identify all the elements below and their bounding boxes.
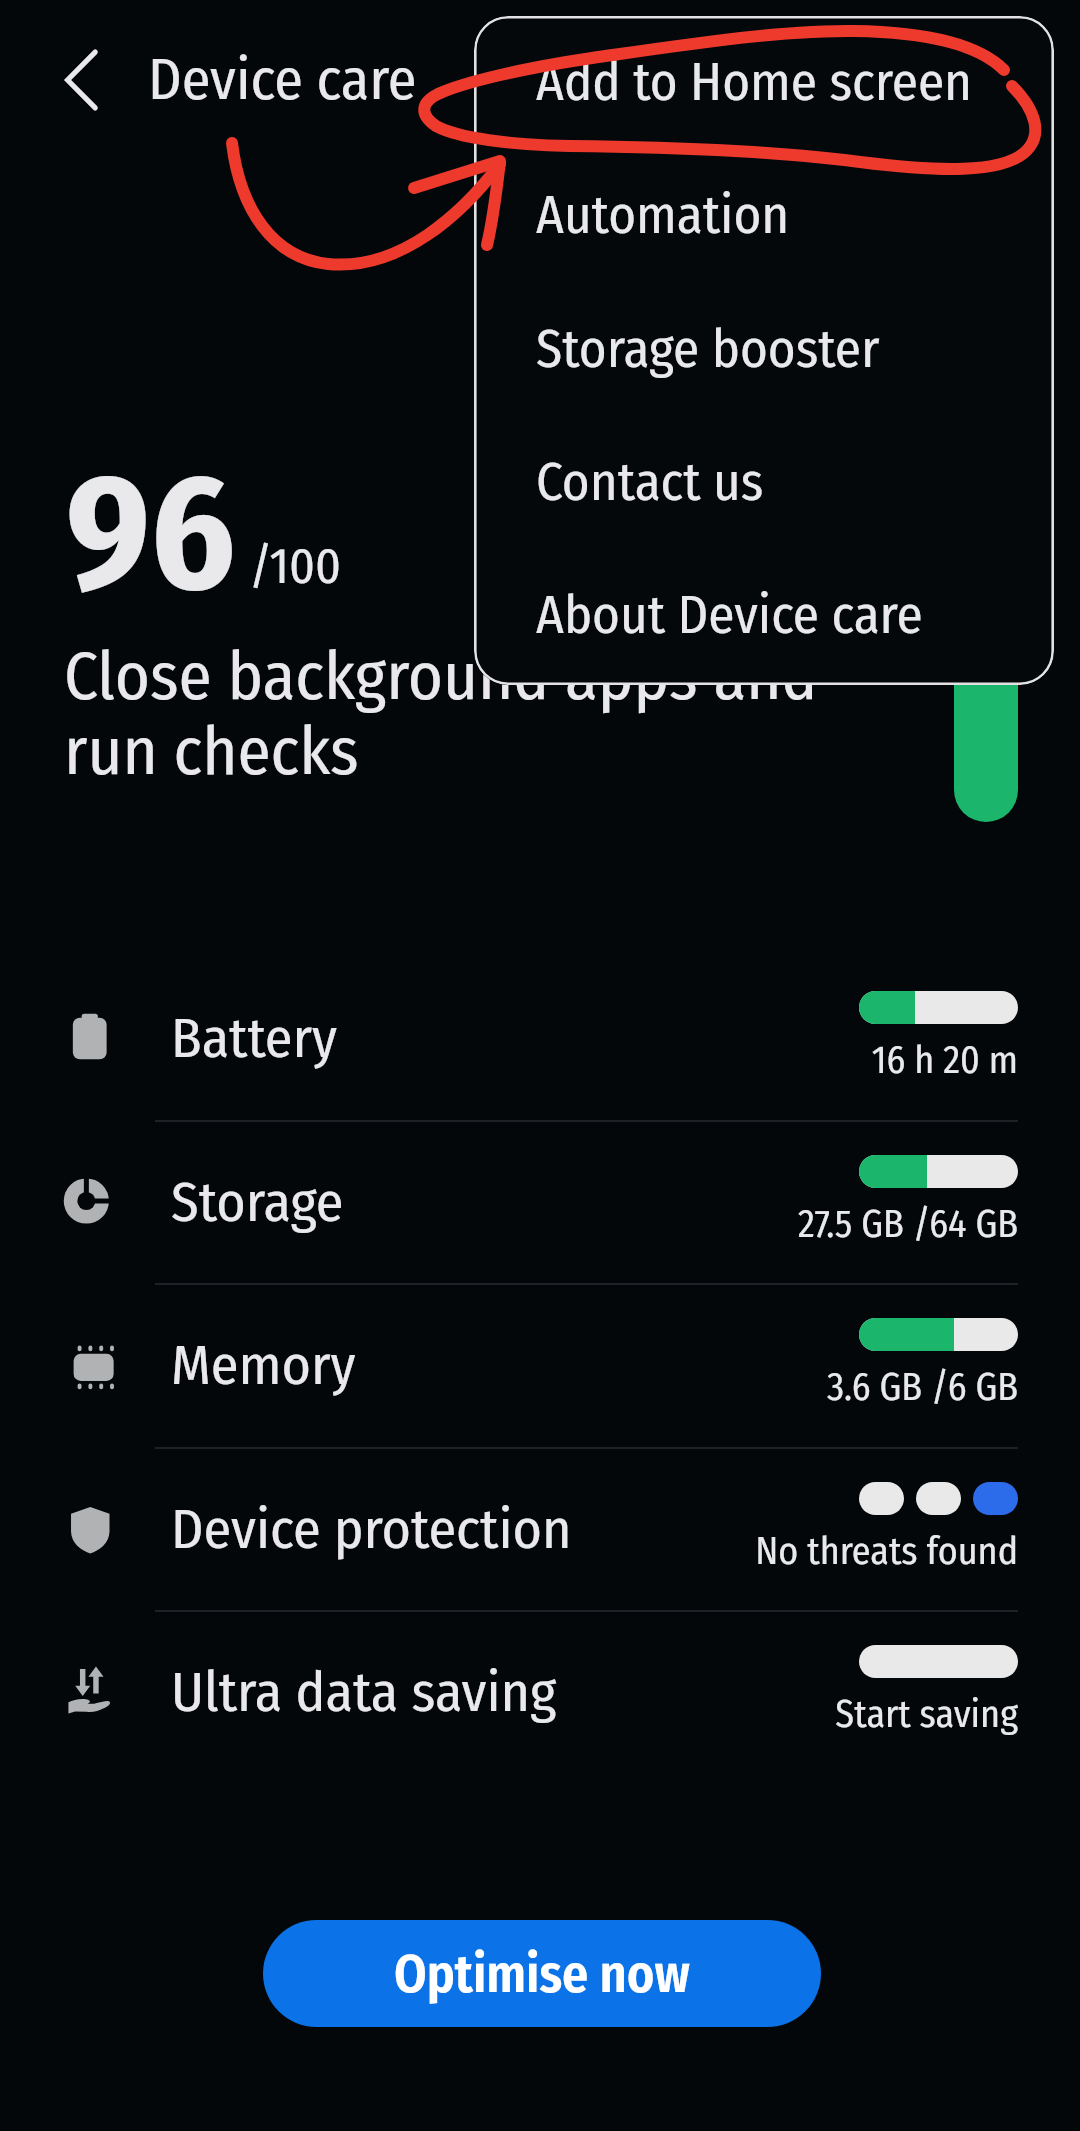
staticText: 27.5 GB /64 GB	[797, 1201, 1018, 1247]
staticText: Optimise now	[394, 1943, 690, 2005]
button[interactable]: Storage	[0, 1123, 1080, 1286]
staticText: Automation	[536, 183, 790, 247]
staticText: Close background apps and run checks	[64, 636, 874, 792]
staticText: Start saving	[835, 1691, 1018, 1737]
button[interactable]: Ultra data saving	[0, 1613, 1080, 1776]
button[interactable]: Navigate up	[34, 32, 130, 128]
staticText: Battery	[171, 1005, 338, 1072]
button[interactable]: Automation	[474, 148, 1054, 282]
staticText: Device care	[148, 45, 417, 115]
staticText: No threats found	[755, 1528, 1018, 1574]
staticText: Add to Home screen	[536, 50, 973, 114]
button[interactable]: Battery	[0, 959, 1080, 1122]
button[interactable]: Contact us	[474, 415, 1054, 549]
staticText: Storage booster	[536, 317, 880, 381]
staticText: /100	[249, 536, 341, 596]
staticText: 3.6 GB /6 GB	[826, 1364, 1018, 1410]
staticText: Memory	[171, 1332, 356, 1399]
staticText: Storage	[171, 1169, 344, 1236]
staticText: About Device care	[536, 583, 923, 647]
staticText: Ultra data saving	[171, 1659, 557, 1726]
staticText: Device protection	[171, 1496, 572, 1563]
button[interactable]: Storage booster	[474, 282, 1054, 416]
staticText: 16 h 20 m	[871, 1037, 1018, 1083]
staticText: 96	[66, 436, 236, 632]
button[interactable]: Add to Home screen	[474, 16, 1054, 149]
button[interactable]: About Device care	[474, 548, 1054, 682]
staticText: Contact us	[536, 450, 764, 514]
button[interactable]: Device protection	[0, 1450, 1080, 1613]
button[interactable]: Optimise now	[263, 1920, 821, 2027]
button[interactable]: Memory	[0, 1286, 1080, 1449]
